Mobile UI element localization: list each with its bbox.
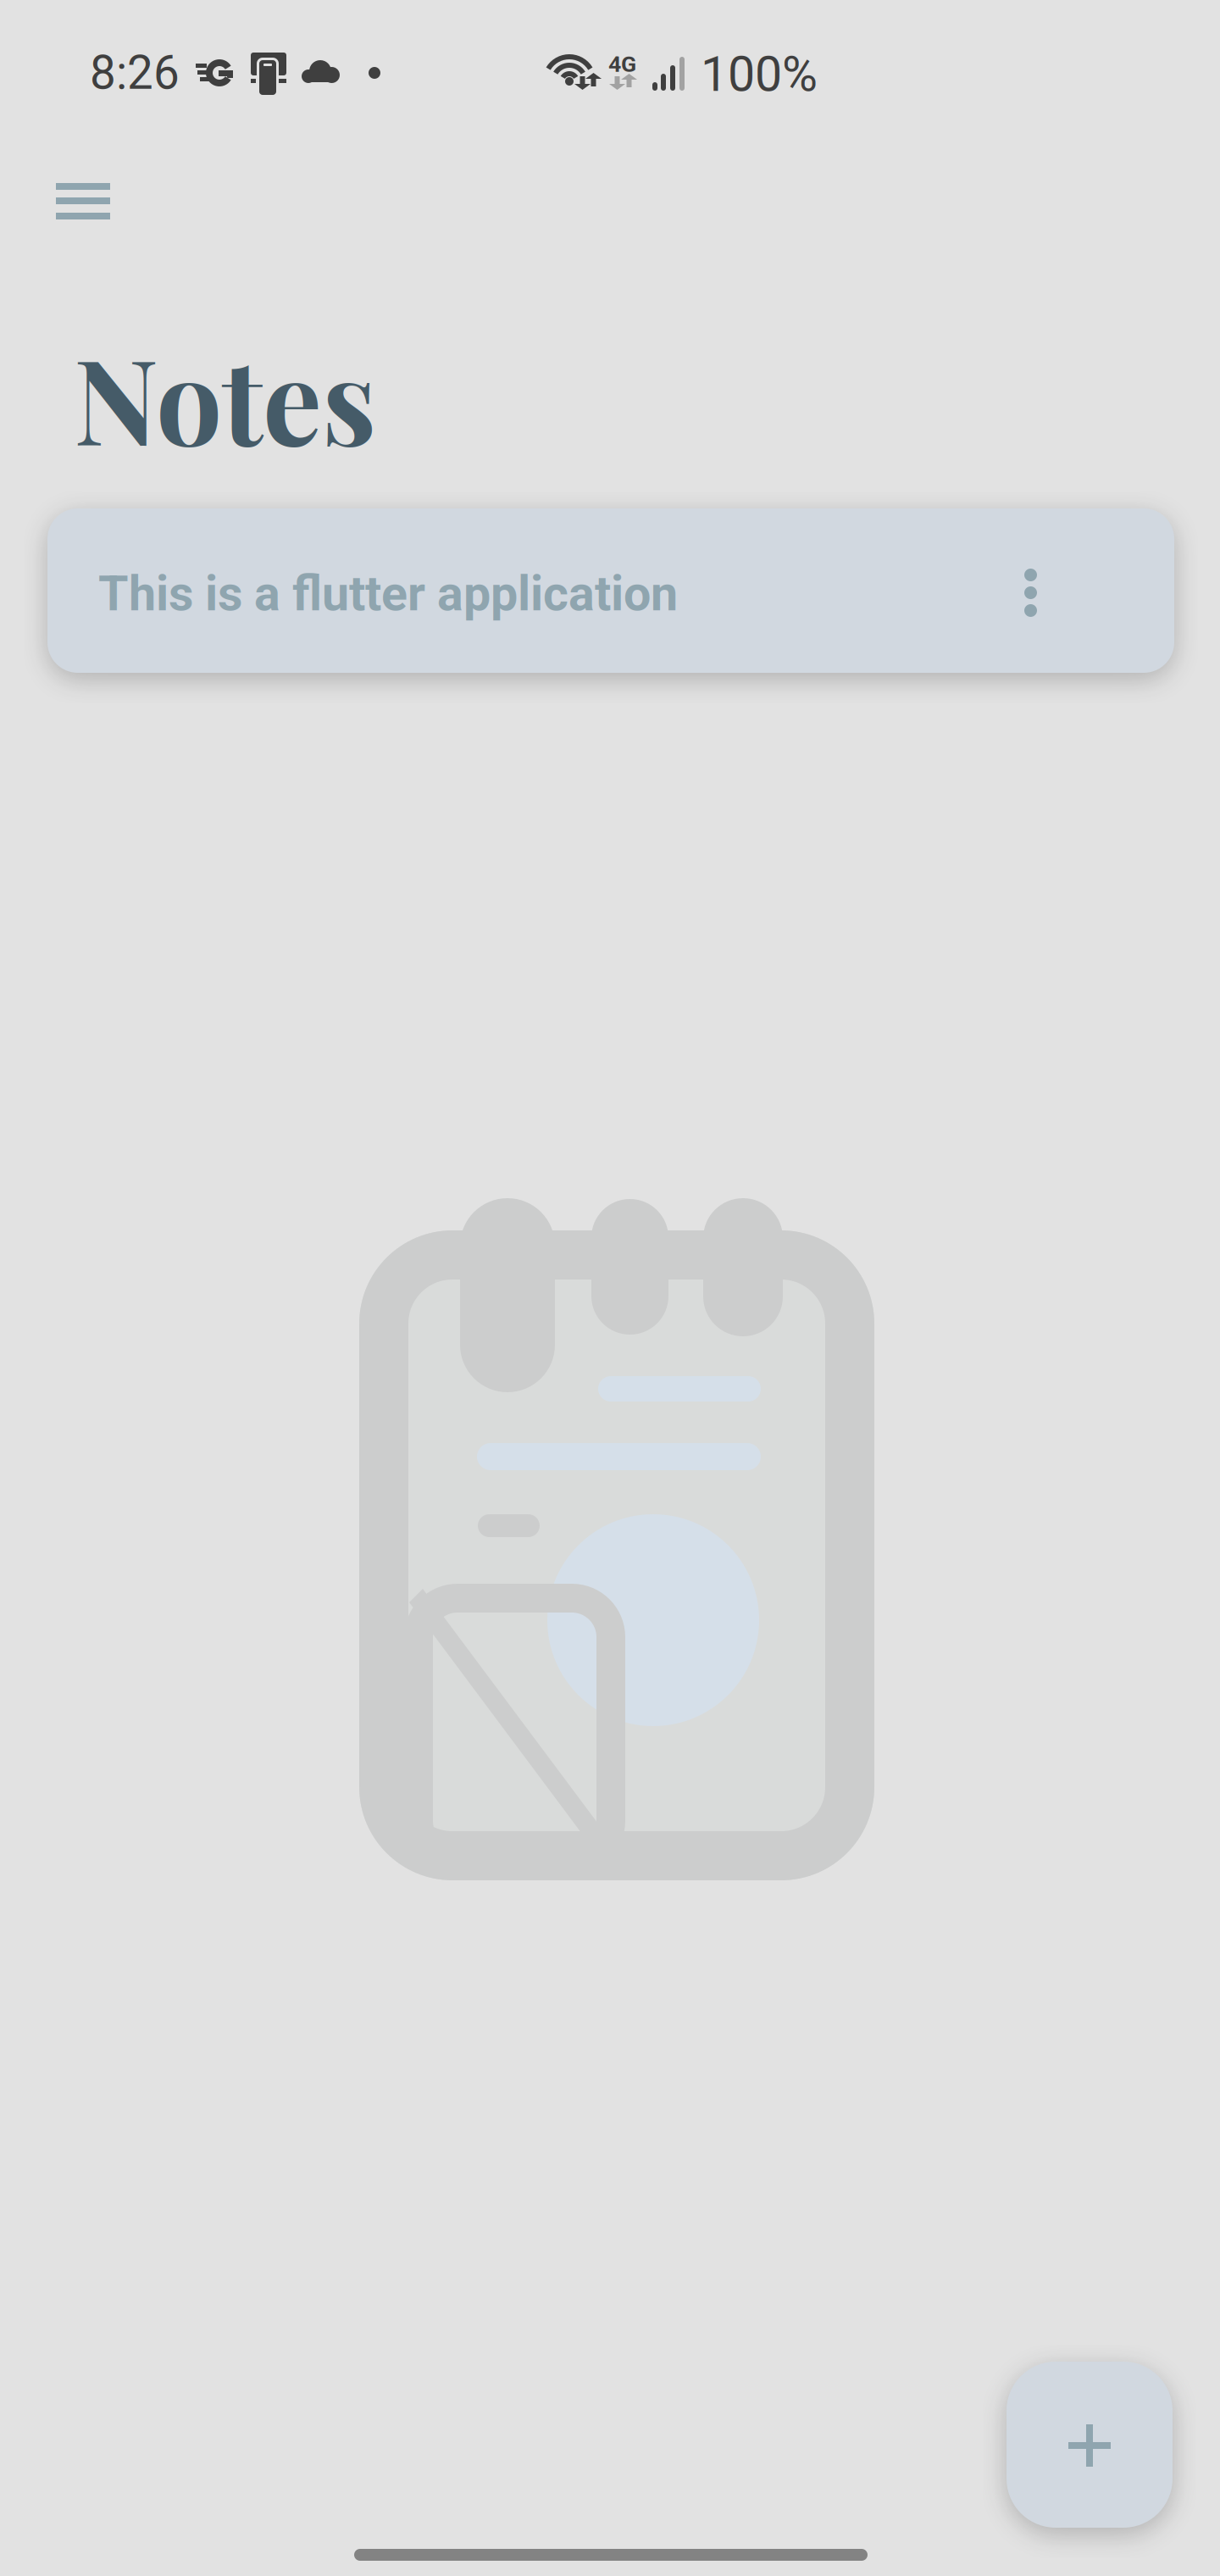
staticText: 4G — [608, 51, 636, 77]
button[interactable]: This is a flutter application — [47, 508, 1174, 673]
button[interactable]: Add note — [1006, 2362, 1173, 2528]
staticText: 100% — [701, 46, 818, 103]
staticText: 8:26 — [90, 46, 180, 100]
staticText: Notes — [74, 319, 376, 475]
staticText: This is a flutter application — [98, 565, 678, 622]
button[interactable]: Open menu — [29, 161, 137, 254]
